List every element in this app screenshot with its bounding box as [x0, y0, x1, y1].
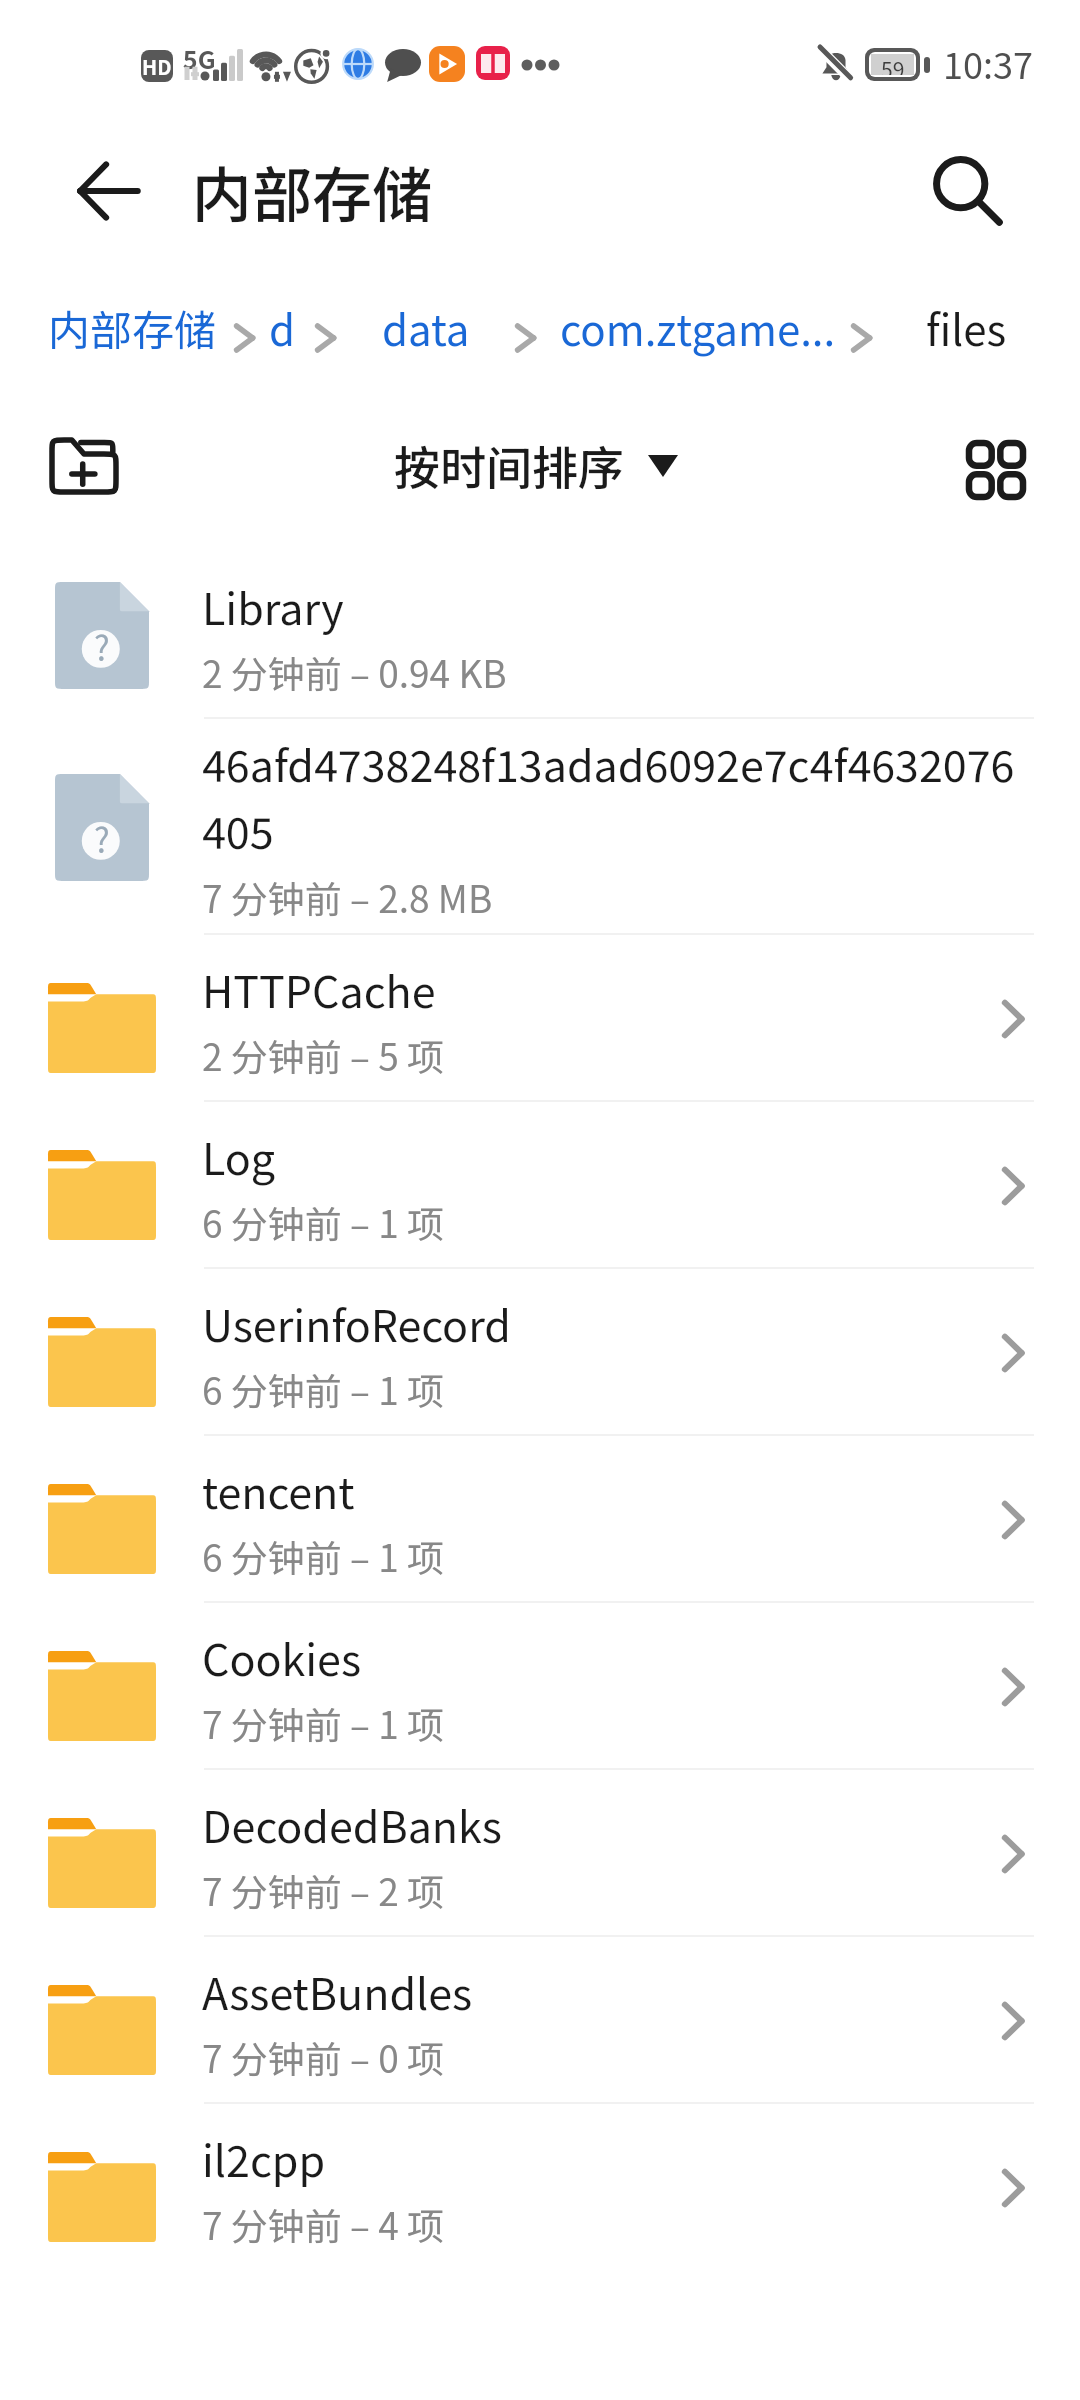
staticText: 7 分钟前 – 0 项 — [202, 2030, 445, 2084]
button[interactable]: files — [926, 297, 1007, 358]
staticText: AssetBundles — [202, 1960, 473, 2022]
button[interactable]: il2cpp — [0, 2104, 1080, 2271]
button[interactable]: ? — [0, 719, 1080, 935]
staticText: 6 分钟前 – 1 项 — [202, 1362, 445, 1416]
staticText: 7 分钟前 – 2.8 MB — [202, 870, 493, 924]
staticText: tencent — [202, 1459, 355, 1521]
button[interactable]: Grid view — [944, 418, 1048, 522]
button[interactable]: d — [269, 297, 296, 358]
button[interactable]: HTTPCache — [0, 935, 1080, 1102]
staticText: 内部存储 — [48, 297, 217, 358]
staticText: 7 分钟前 – 1 项 — [202, 1696, 445, 1750]
staticText: 2 分钟前 – 0.94 KB — [202, 645, 507, 699]
button[interactable]: New folder — [32, 414, 136, 518]
staticText: HD — [142, 52, 172, 81]
staticText: 按时间排序 — [394, 432, 624, 499]
staticText: DecodedBanks — [202, 1793, 502, 1855]
staticText: 10:37 — [943, 37, 1033, 89]
button[interactable]: DecodedBanks — [0, 1770, 1080, 1937]
button[interactable]: com.ztgame... — [560, 297, 836, 358]
button[interactable]: AssetBundles — [0, 1937, 1080, 2104]
button[interactable]: data — [382, 297, 470, 358]
staticText: com.ztgame... — [560, 297, 836, 358]
staticText: HTTPCache — [202, 958, 436, 1020]
button[interactable]: Back — [58, 141, 158, 241]
staticText: 7 分钟前 – 4 项 — [202, 2197, 445, 2251]
staticText: 7 分钟前 – 2 项 — [202, 1863, 445, 1917]
staticText: UserinfoRecord — [202, 1292, 511, 1354]
staticText: 内部存储 — [192, 147, 432, 234]
button[interactable]: Search — [917, 140, 1017, 240]
staticText: Library — [202, 575, 344, 637]
button[interactable]: 内部存储 — [48, 297, 217, 358]
staticText: ? — [94, 815, 110, 863]
staticText: Cookies — [202, 1626, 362, 1688]
staticText: 46afd4738248f13adad6092e7c4f4632076405 — [202, 732, 1018, 862]
button[interactable]: ? — [0, 552, 1080, 719]
button[interactable]: UserinfoRecord — [0, 1269, 1080, 1436]
staticText: 6 分钟前 – 1 项 — [202, 1529, 445, 1583]
button[interactable]: Log — [0, 1102, 1080, 1269]
button[interactable]: 按时间排序 — [394, 432, 678, 499]
staticText: 6 分钟前 – 1 项 — [202, 1195, 445, 1249]
staticText: Log — [202, 1125, 275, 1187]
staticText: data — [382, 297, 470, 358]
staticText: files — [926, 297, 1007, 358]
staticText: ? — [94, 623, 110, 671]
staticText: il2cpp — [202, 2127, 326, 2189]
staticText: 5G — [183, 40, 216, 76]
staticText: d — [269, 297, 296, 358]
button[interactable]: tencent — [0, 1436, 1080, 1603]
button[interactable]: Cookies — [0, 1603, 1080, 1770]
staticText: 59 — [881, 54, 905, 75]
staticText: 2 分钟前 – 5 项 — [202, 1028, 445, 1082]
